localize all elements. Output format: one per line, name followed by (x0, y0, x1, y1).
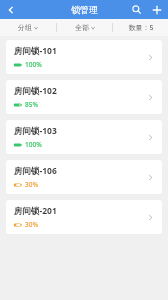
staticText: 数量：5 (128, 23, 154, 33)
button[interactable]: 房间锁-101 (6, 40, 162, 74)
staticText: 房间锁-101 (14, 45, 57, 57)
staticText: 房间锁-201 (14, 205, 57, 217)
staticText: 房间锁-103 (14, 125, 57, 137)
staticText: 85% (25, 100, 38, 109)
staticText: 100% (25, 140, 42, 149)
button[interactable]: Search (126, 0, 146, 19)
staticText: 房间锁-102 (14, 85, 57, 97)
staticText: 30% (25, 180, 38, 189)
button[interactable]: 房间锁-102 (6, 80, 162, 114)
button[interactable]: 房间锁-103 (6, 120, 162, 154)
button[interactable]: 全部 (57, 19, 112, 36)
staticText: 分组 (18, 23, 32, 32)
staticText: 锁管理 (71, 4, 98, 15)
staticText: 房间锁-106 (14, 165, 57, 177)
button[interactable]: 房间锁-201 (6, 200, 162, 234)
button[interactable]: Back (0, 0, 22, 19)
button[interactable]: 数量：5 (113, 19, 168, 36)
button[interactable]: Add (146, 0, 168, 19)
button[interactable]: 分组 (0, 19, 56, 36)
staticText: 100% (25, 60, 42, 69)
staticText: 全部 (75, 23, 89, 32)
staticText: 30% (25, 220, 38, 229)
button[interactable]: 房间锁-106 (6, 160, 162, 194)
